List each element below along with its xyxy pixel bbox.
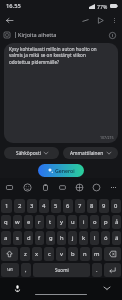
button[interactable]: 1: [1, 199, 12, 213]
button[interactable]: n: [80, 247, 90, 261]
button[interactable]: Clipboard: [36, 178, 54, 196]
staticText: n: [83, 250, 87, 258]
staticText: å: [115, 218, 119, 226]
staticText: u: [71, 218, 75, 226]
staticText: 107/215: [100, 135, 114, 140]
button[interactable]: s: [13, 231, 22, 245]
button[interactable]: Attach file: [78, 13, 93, 28]
button[interactable]: Suomi: [33, 263, 90, 277]
staticText: !#1: [7, 267, 14, 273]
button[interactable]: r: [35, 215, 44, 229]
button[interactable]: Translate: [71, 178, 88, 196]
staticText: r: [38, 218, 41, 226]
button[interactable]: w: [13, 215, 22, 229]
staticText: 7: [78, 202, 82, 210]
staticText: d: [27, 234, 31, 242]
staticText: a: [4, 234, 8, 242]
button[interactable]: Sähköposti: [4, 147, 59, 159]
button[interactable]: p: [101, 215, 110, 229]
staticText: 1: [5, 202, 9, 210]
button[interactable]: l: [90, 231, 99, 245]
button[interactable]: Send: [93, 13, 108, 28]
staticText: t: [49, 218, 52, 226]
staticText: g: [49, 234, 53, 242]
button[interactable]: å: [112, 215, 121, 229]
staticText: Kysy kohteliaasti milloin auton huolto o…: [9, 46, 97, 66]
button[interactable]: 6: [63, 199, 73, 213]
button[interactable]: u: [68, 215, 77, 229]
button[interactable]: e: [24, 215, 33, 229]
button[interactable]: More options: [108, 14, 121, 27]
button[interactable]: i: [79, 215, 88, 229]
button[interactable]: j: [68, 231, 77, 245]
staticText: k: [82, 234, 86, 242]
staticText: 2: [18, 202, 22, 210]
button[interactable]: Kysy kohteliaasti milloin auton huolto o…: [4, 43, 118, 143]
button[interactable]: Help: [106, 29, 119, 42]
button[interactable]: 5: [51, 199, 61, 213]
staticText: h: [60, 234, 64, 242]
staticText: v: [60, 250, 63, 258]
staticText: l: [94, 234, 96, 242]
button[interactable]: k: [79, 231, 88, 245]
staticText: o: [93, 218, 97, 226]
staticText: Sähköposti: [16, 150, 41, 157]
staticText: 8: [90, 202, 94, 210]
button[interactable]: Kirjoita aihetta: [0, 28, 122, 42]
button[interactable]: z: [20, 247, 30, 261]
staticText: Suomi: [55, 267, 69, 273]
button[interactable]: .: [92, 263, 102, 277]
button[interactable]: 9: [99, 199, 109, 213]
button[interactable]: c: [44, 247, 54, 261]
button[interactable]: g: [46, 231, 55, 245]
staticText: j: [72, 234, 74, 242]
button[interactable]: 8: [87, 199, 97, 213]
button[interactable]: m: [92, 247, 102, 261]
staticText: 3: [30, 202, 34, 210]
button[interactable]: Settings: [88, 178, 105, 196]
button[interactable]: b: [68, 247, 78, 261]
button[interactable]: Keyboard settings: [0, 178, 18, 196]
button[interactable]: Shift: [1, 247, 18, 261]
button[interactable]: q: [1, 215, 11, 229]
button[interactable]: ,: [21, 263, 31, 277]
staticText: q: [4, 218, 8, 226]
staticText: 0: [114, 202, 118, 210]
button[interactable]: 4: [39, 199, 49, 213]
button[interactable]: !#1: [1, 263, 19, 277]
button[interactable]: 2: [14, 199, 25, 213]
button[interactable]: Back: [1, 12, 17, 28]
staticText: Ammattilainen: [70, 150, 104, 157]
staticText: b: [71, 250, 75, 258]
button[interactable]: v: [56, 247, 66, 261]
staticText: s: [16, 234, 19, 242]
button[interactable]: ö: [101, 231, 110, 245]
button[interactable]: ä: [112, 231, 121, 245]
button[interactable]: Ammattilainen: [63, 147, 118, 159]
button[interactable]: h: [57, 231, 66, 245]
button[interactable]: Stickers: [54, 178, 71, 196]
button[interactable]: a: [1, 231, 11, 245]
button[interactable]: Voice input: [11, 282, 23, 294]
button[interactable]: o: [90, 215, 99, 229]
button[interactable]: 0: [111, 199, 121, 213]
button[interactable]: Hide keyboard: [101, 282, 113, 294]
button[interactable]: x: [32, 247, 42, 261]
staticText: f: [38, 234, 41, 242]
button[interactable]: More: [105, 178, 122, 196]
button[interactable]: Generoi: [38, 164, 84, 177]
staticText: z: [24, 250, 27, 258]
button[interactable]: t: [46, 215, 55, 229]
button[interactable]: Enter: [104, 263, 121, 277]
button[interactable]: Backspace: [104, 247, 121, 261]
button[interactable]: 3: [27, 199, 37, 213]
staticText: 9: [102, 202, 106, 210]
button[interactable]: Emoji: [18, 178, 36, 196]
button[interactable]: y: [57, 215, 66, 229]
button[interactable]: d: [24, 231, 33, 245]
button[interactable]: 7: [75, 199, 85, 213]
staticText: ,: [25, 266, 27, 274]
staticText: .: [96, 266, 98, 274]
staticText: ö: [104, 234, 108, 242]
button[interactable]: f: [35, 231, 44, 245]
